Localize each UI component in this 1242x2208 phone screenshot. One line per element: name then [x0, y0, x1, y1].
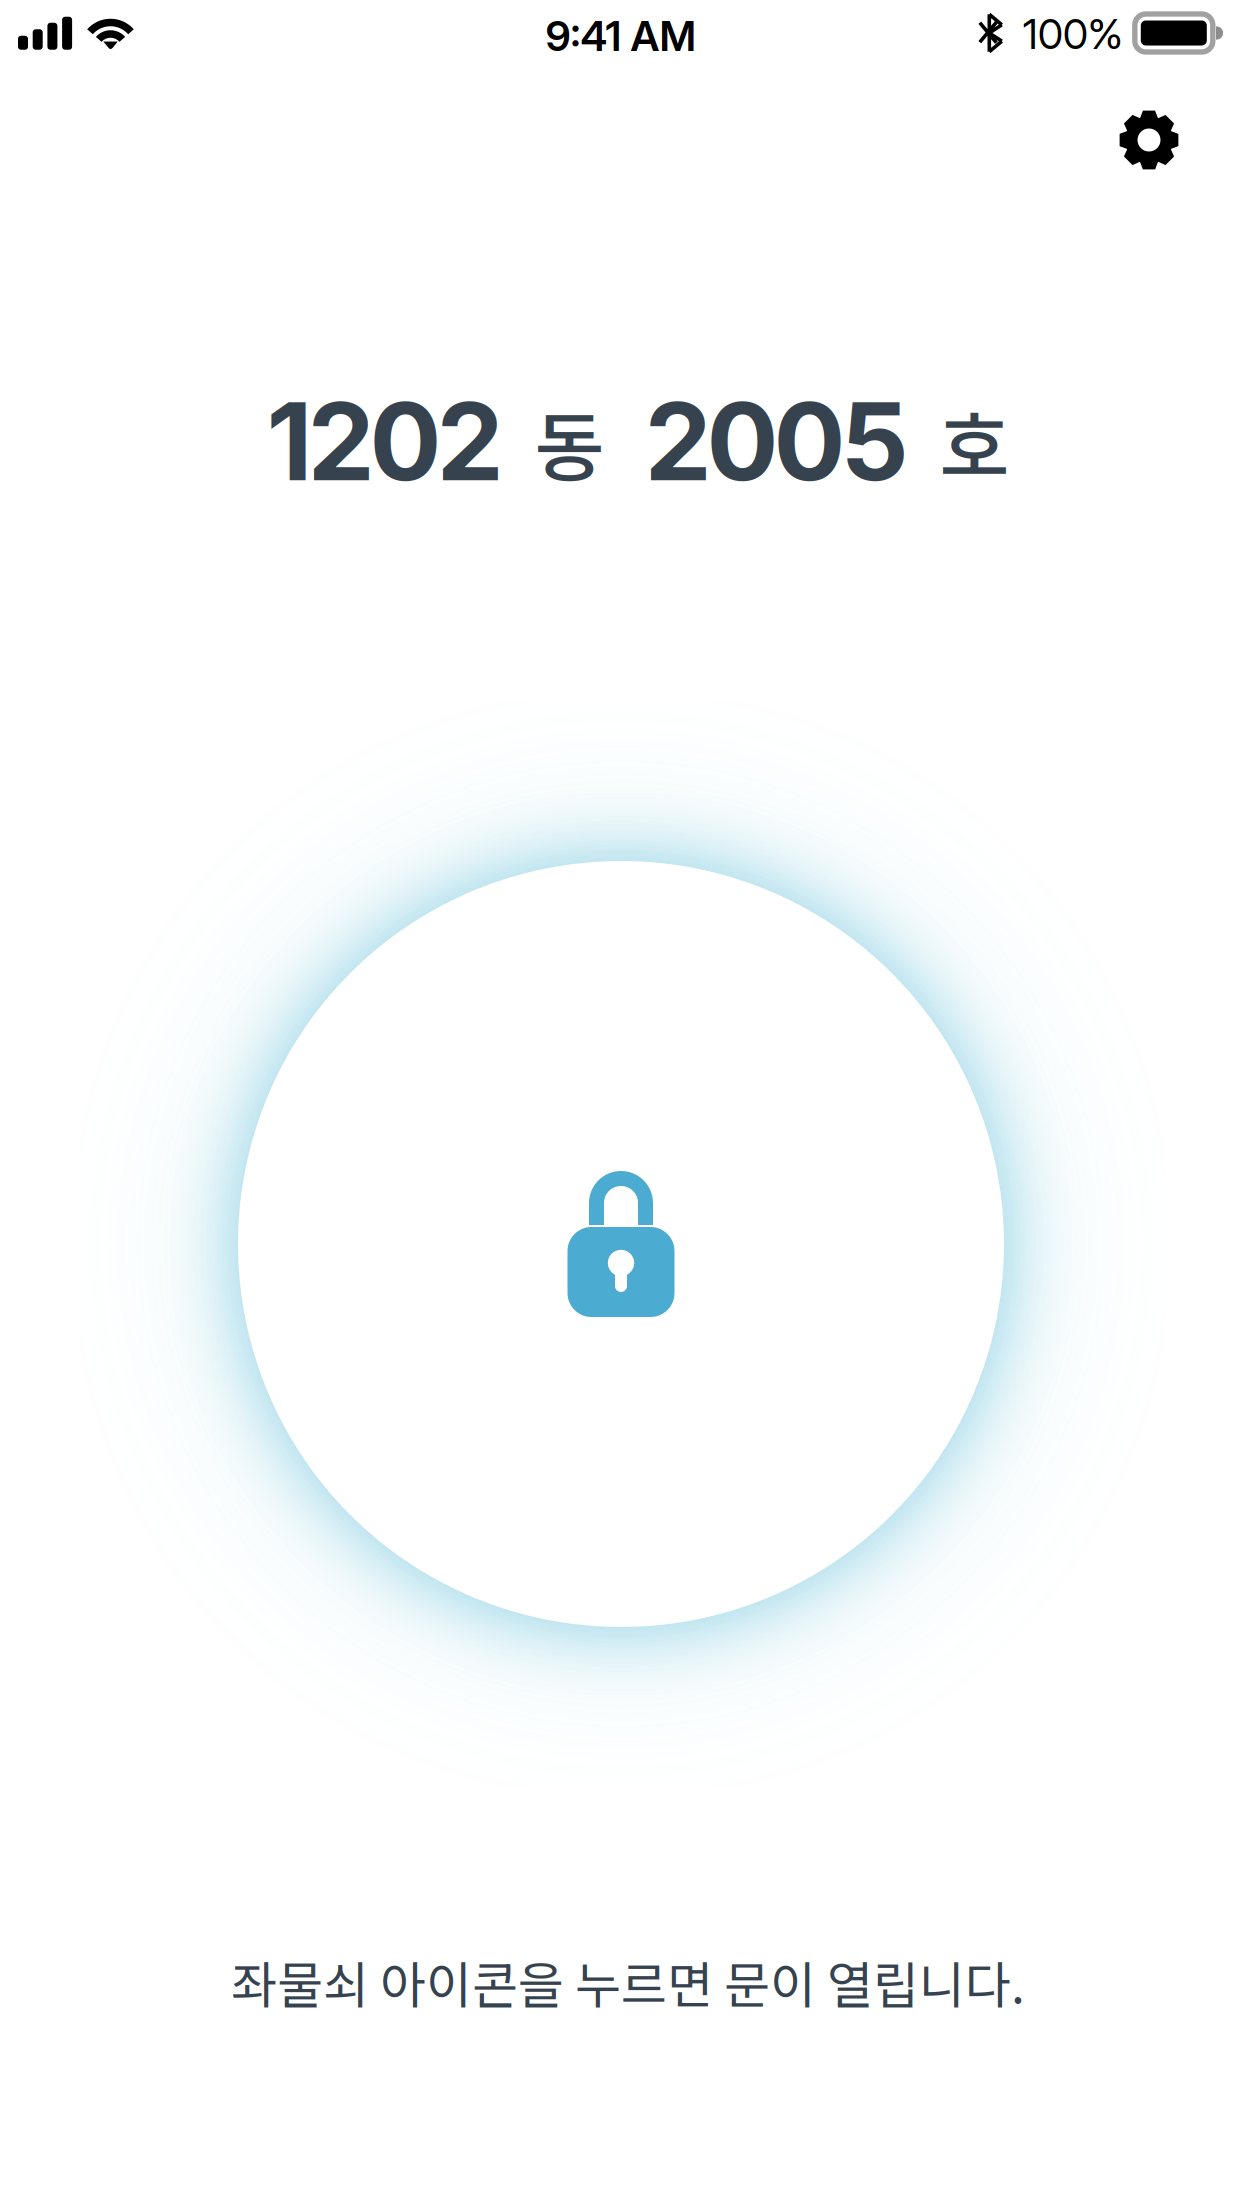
staticText: 9:41 AM — [545, 11, 696, 61]
staticText: 호 — [939, 387, 1009, 497]
staticText: 동 — [534, 387, 604, 497]
staticText: 100% — [1023, 9, 1123, 59]
button[interactable]: Unlock door — [238, 861, 1004, 1627]
staticText: 2005 — [644, 377, 908, 506]
staticText: 1202 — [266, 377, 503, 506]
staticText: 좌물쇠 아이콘을 누르면 문이 열립니다. — [231, 1946, 1025, 2018]
button[interactable]: Settings — [1089, 80, 1209, 192]
